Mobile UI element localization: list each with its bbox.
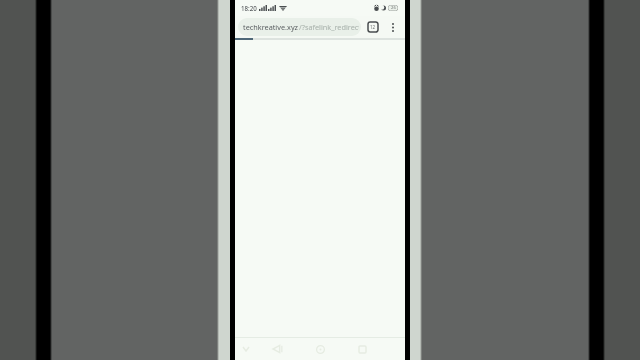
staticText: techkreative.xyz <box>243 22 299 32</box>
button[interactable]: Back <box>269 338 285 360</box>
staticText: 18:20 <box>241 4 257 12</box>
button[interactable]: Hide keyboard <box>238 338 254 360</box>
button[interactable]: Recent apps <box>354 338 370 360</box>
staticText: 26 <box>391 5 396 11</box>
staticText: 12 <box>370 24 376 30</box>
button[interactable]: Switch or close tabs <box>366 20 380 34</box>
button[interactable]: techkreative.xyz <box>238 18 361 36</box>
button[interactable]: Home <box>311 338 329 360</box>
staticText: /?safelink_redirect <box>299 22 359 32</box>
button[interactable]: More options <box>385 19 401 35</box>
